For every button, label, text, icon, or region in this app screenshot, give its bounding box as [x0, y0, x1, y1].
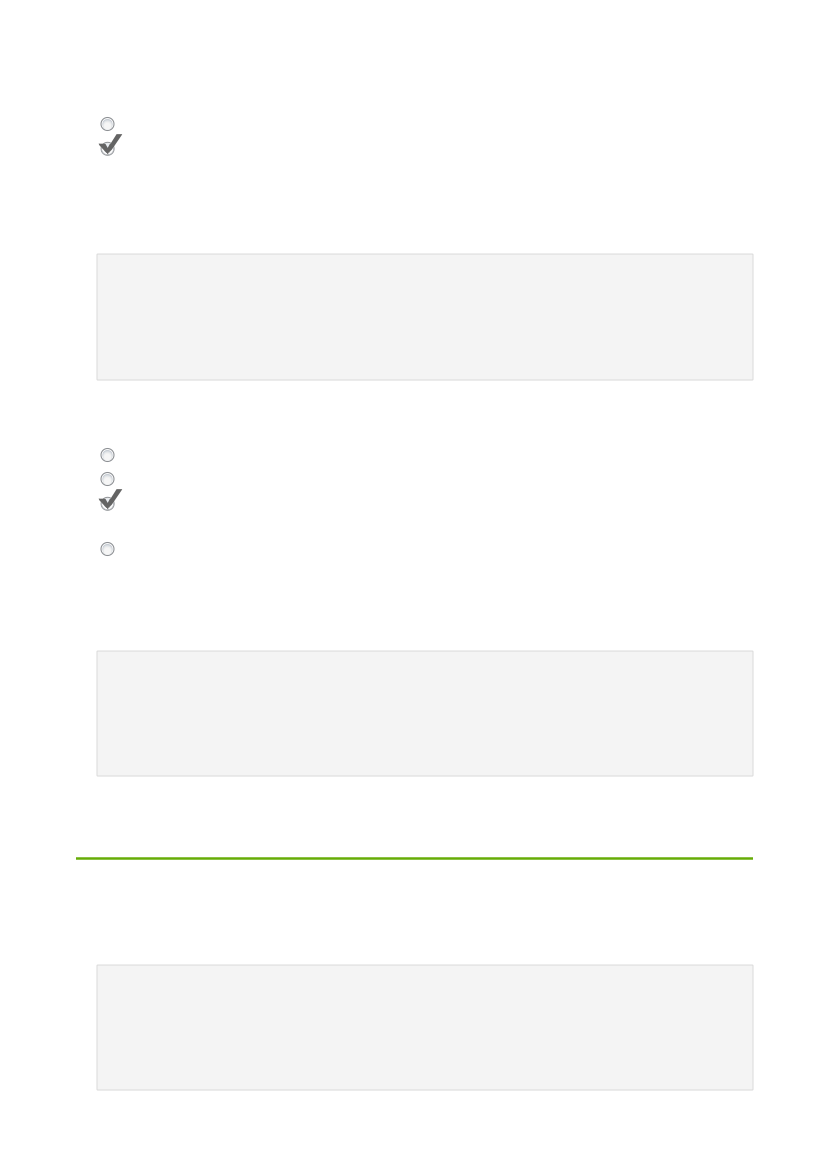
button[interactable]: Option 1: [100, 117, 114, 131]
button[interactable]: Option 3, selected: [97, 487, 127, 513]
button[interactable]: Option 2: [100, 472, 114, 486]
button[interactable]: Option 1: [100, 448, 114, 462]
button[interactable]: Option 4: [100, 542, 114, 556]
button[interactable]: Option 2, selected: [97, 132, 127, 158]
